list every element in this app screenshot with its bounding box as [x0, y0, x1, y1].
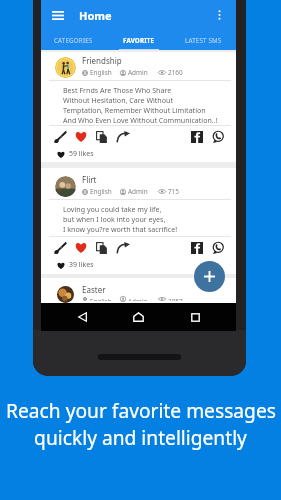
staticText: Best Frnds Are Those Who Share — [63, 85, 172, 95]
staticText: Home — [79, 8, 112, 23]
button[interactable]: Like — [74, 130, 87, 143]
staticText: Admin — [128, 68, 148, 77]
staticText: 59 likes — [69, 149, 94, 159]
button[interactable]: Copy — [95, 130, 108, 143]
button[interactable]: FAVORITE — [106, 30, 171, 50]
button[interactable]: Share — [117, 130, 130, 143]
button[interactable]: Copy — [95, 241, 108, 254]
staticText: FAVORITE — [123, 36, 155, 44]
button[interactable]: Recent apps — [185, 307, 205, 327]
button[interactable]: Edit — [54, 241, 67, 254]
staticText: Easter — [82, 284, 106, 295]
staticText: 39 likes — [69, 260, 94, 270]
button[interactable]: Share on Facebook — [190, 241, 203, 254]
staticText: And Who Even Love Without Communication.… — [63, 115, 218, 125]
button[interactable]: LATEST SMS — [171, 30, 236, 50]
staticText: Temptation, Remember Without Limitation — [63, 105, 206, 115]
button[interactable]: Like — [74, 241, 87, 254]
staticText: I know you?re worth that sacrifice! — [63, 224, 178, 234]
button[interactable]: Share on WhatsApp — [211, 130, 224, 143]
staticText: 2160 — [168, 68, 183, 77]
button[interactable]: Home — [128, 307, 148, 327]
button[interactable]: Share — [117, 241, 130, 254]
staticText: quickly and intelligently — [34, 424, 247, 450]
staticText: English — [90, 297, 112, 301]
staticText: Reach your favorite messages — [6, 397, 276, 423]
staticText: but when I look into your eyes, — [63, 214, 166, 224]
button[interactable]: Add message — [194, 261, 225, 292]
staticText: English — [90, 68, 112, 77]
staticText: English — [90, 187, 112, 196]
staticText: LATEST SMS — [185, 36, 222, 44]
staticText: Admin — [128, 187, 148, 196]
staticText: Loving you could take my life, — [63, 204, 162, 214]
staticText: Flirt — [82, 174, 97, 185]
staticText: 715 — [168, 187, 179, 196]
button[interactable]: Back — [72, 307, 92, 327]
staticText: Friendship — [82, 55, 122, 66]
button[interactable]: Share on Facebook — [190, 130, 203, 143]
button[interactable]: Open navigation menu — [50, 7, 66, 23]
staticText: CATEGORIES — [54, 36, 93, 44]
staticText: Admin — [128, 297, 148, 301]
button[interactable]: Edit — [54, 130, 67, 143]
button[interactable]: More options — [211, 7, 227, 23]
button[interactable]: Share on WhatsApp — [211, 241, 224, 254]
staticText: Without Hesitation, Care Without — [63, 95, 173, 105]
staticText: 2857 — [168, 297, 183, 301]
button[interactable]: CATEGORIES — [41, 30, 106, 50]
